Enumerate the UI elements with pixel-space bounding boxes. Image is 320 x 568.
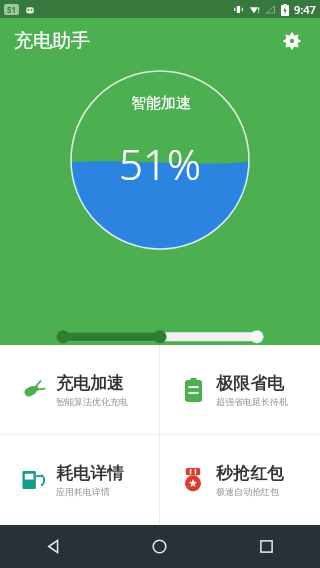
button[interactable]: 充电加速 [0,345,159,434]
staticText: 耗电详情 [56,463,124,484]
button[interactable]: Settings [272,21,312,61]
staticText: 智能算法优化充电 [56,396,128,407]
staticText: 极速自动抢红包 [216,486,279,497]
staticText: 秒抢红包 [216,463,284,484]
staticText: 51 [7,4,17,15]
button[interactable]: Home [106,525,213,568]
staticText: 应用耗电详情 [56,486,110,497]
button[interactable]: 极限省电 [160,345,320,434]
staticText: 极限省电 [216,373,284,394]
button[interactable]: 秒抢红包 [160,435,320,524]
button[interactable]: 耗电详情 [0,435,159,524]
button[interactable]: Back [0,525,106,568]
staticText: 智能加速 [131,94,191,113]
staticText: 超强省电延长待机 [216,396,288,407]
button[interactable]: Recents [213,525,320,568]
staticText: 51% [119,135,202,192]
staticText: 充电加速 [56,373,124,394]
staticText: 充电助手 [14,29,90,53]
staticText: 9:47 [294,2,316,17]
